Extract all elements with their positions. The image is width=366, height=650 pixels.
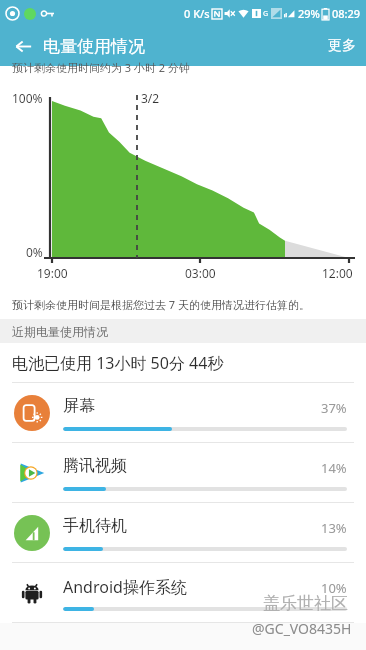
staticText: 0% [26,244,43,260]
button[interactable]: Android操作系统 [0,563,366,623]
staticText: 更多 [328,37,356,55]
staticText: 预计剩余使用时间约为 3 小时 2 分钟 [12,60,191,75]
staticText: 08:29 [332,6,361,21]
staticText: 100% [12,90,43,106]
staticText: 29% [298,6,320,21]
staticText: 14% [321,459,347,477]
button[interactable]: 腾讯视频 [0,443,366,503]
staticText: 19:00 [37,265,68,281]
staticText: @GC_VO8435H [252,619,352,638]
staticText: 10% [321,579,347,597]
staticText: 03:00 [185,265,216,281]
staticText: 0 K/s [184,6,210,21]
staticText: 13% [321,519,347,537]
staticText: 预计剩余使用时间是根据您过去 7 天的使用情况进行估算的。 [12,297,311,312]
staticText: 电量使用情况 [43,36,145,57]
button[interactable]: Back [8,31,38,61]
staticText: 盖乐世社区 [263,593,348,614]
staticText: Android操作系统 [63,576,187,598]
button[interactable]: 手机待机 [0,503,366,563]
staticText: 37% [321,399,347,417]
staticText: 12:00 [322,265,353,281]
button[interactable]: 更多 [328,37,356,55]
staticText: 3/2 [141,90,160,106]
staticText: 手机待机 [63,516,127,536]
staticText: G [263,9,269,19]
button[interactable]: 屏幕 [0,383,366,443]
staticText: 屏幕 [63,396,95,416]
staticText: 腾讯视频 [63,456,127,476]
staticText: 电池已使用 13小时 50分 44秒 [12,352,224,374]
staticText: 近期电量使用情况 [12,324,108,339]
